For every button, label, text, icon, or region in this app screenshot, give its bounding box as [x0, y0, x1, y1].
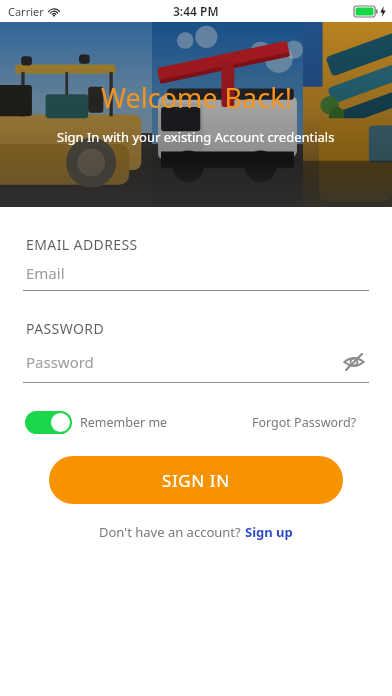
staticText: Don't have an account?: [99, 523, 245, 541]
staticText: Carrier: [8, 4, 44, 19]
staticText: PASSWORD: [26, 319, 105, 338]
staticText: Sign In with your existing Account crede…: [57, 128, 335, 146]
button[interactable]: SIGN IN: [49, 456, 343, 504]
staticText: Remember me: [80, 414, 168, 431]
button[interactable]: Forgot Password?: [252, 414, 357, 431]
button[interactable]: Sign up: [245, 523, 293, 541]
staticText: Password: [26, 352, 94, 372]
staticText: EMAIL ADDRESS: [26, 235, 138, 254]
button[interactable]: Email: [23, 263, 369, 291]
staticText: Welcome Back!: [101, 79, 292, 116]
staticText: SIGN IN: [162, 469, 230, 492]
staticText: 3:44 PM: [173, 3, 219, 19]
staticText: Sign up: [245, 523, 293, 541]
button[interactable]: Show password: [339, 347, 369, 377]
button[interactable]: Remember me: [25, 411, 168, 434]
staticText: Forgot Password?: [252, 414, 357, 431]
staticText: Email: [26, 263, 65, 283]
